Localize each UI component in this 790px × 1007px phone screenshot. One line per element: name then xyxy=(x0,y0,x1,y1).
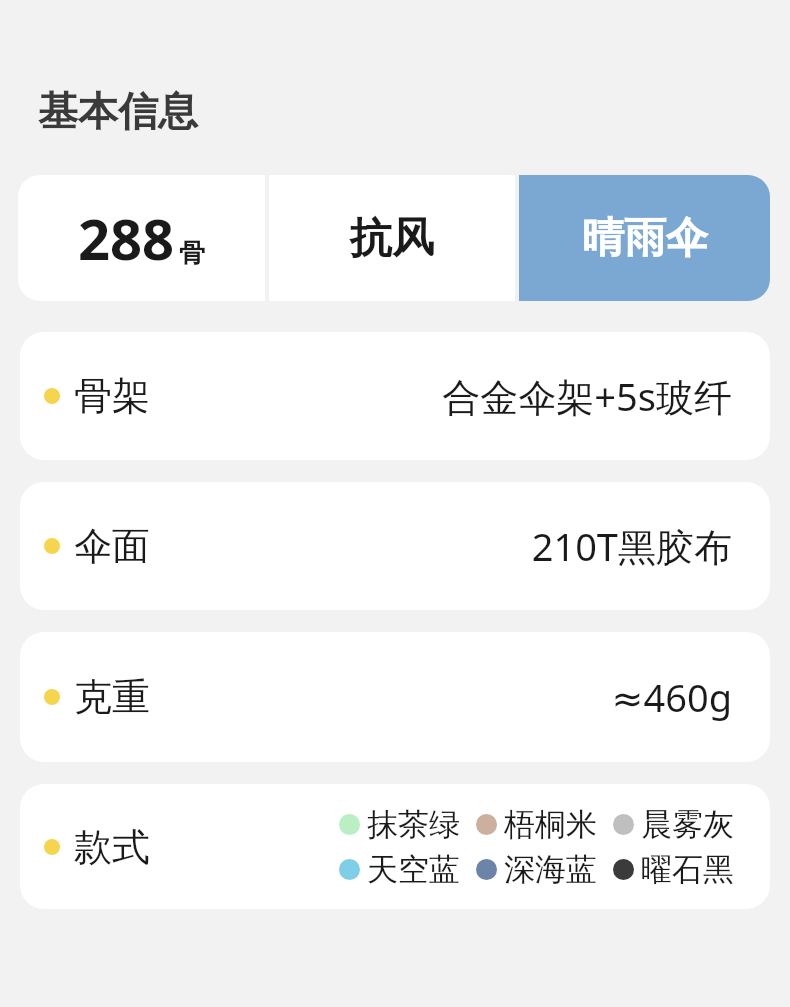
button[interactable]: 晨雾灰 xyxy=(613,805,734,844)
staticText: 抗风 xyxy=(350,212,434,265)
button[interactable]: 曜石黑 xyxy=(613,850,734,889)
button[interactable]: 梧桐米 xyxy=(476,805,597,844)
button[interactable]: 深海蓝 xyxy=(476,850,597,889)
staticText: 伞面 xyxy=(74,522,150,570)
button[interactable]: 克重 xyxy=(20,632,770,762)
button[interactable]: 款式 xyxy=(20,784,770,909)
staticText: 基本信息 xyxy=(38,86,198,136)
button[interactable]: 抹茶绿 xyxy=(339,805,460,844)
staticText: 骨架 xyxy=(74,372,150,420)
staticText: 晴雨伞 xyxy=(582,212,708,265)
staticText: 款式 xyxy=(74,823,150,871)
staticText: 合金伞架+5s玻纤 xyxy=(442,370,732,422)
button[interactable]: 伞面 xyxy=(20,482,770,610)
button[interactable]: 天空蓝 xyxy=(339,850,460,889)
button[interactable]: 晴雨伞 xyxy=(519,175,770,301)
staticText: 抹茶绿 xyxy=(367,805,460,844)
staticText: 深海蓝 xyxy=(504,850,597,889)
staticText: ≈460g xyxy=(611,671,732,723)
button[interactable]: 288 xyxy=(18,175,265,301)
staticText: 288 xyxy=(78,200,175,276)
staticText: 骨 xyxy=(179,237,205,270)
staticText: 克重 xyxy=(74,673,150,721)
button[interactable]: 抗风 xyxy=(269,175,515,301)
button[interactable]: 骨架 xyxy=(20,332,770,460)
staticText: 曜石黑 xyxy=(641,850,734,889)
staticText: 梧桐米 xyxy=(504,805,597,844)
staticText: 晨雾灰 xyxy=(641,805,734,844)
staticText: 天空蓝 xyxy=(367,850,460,889)
staticText: 210T黑胶布 xyxy=(531,520,732,572)
